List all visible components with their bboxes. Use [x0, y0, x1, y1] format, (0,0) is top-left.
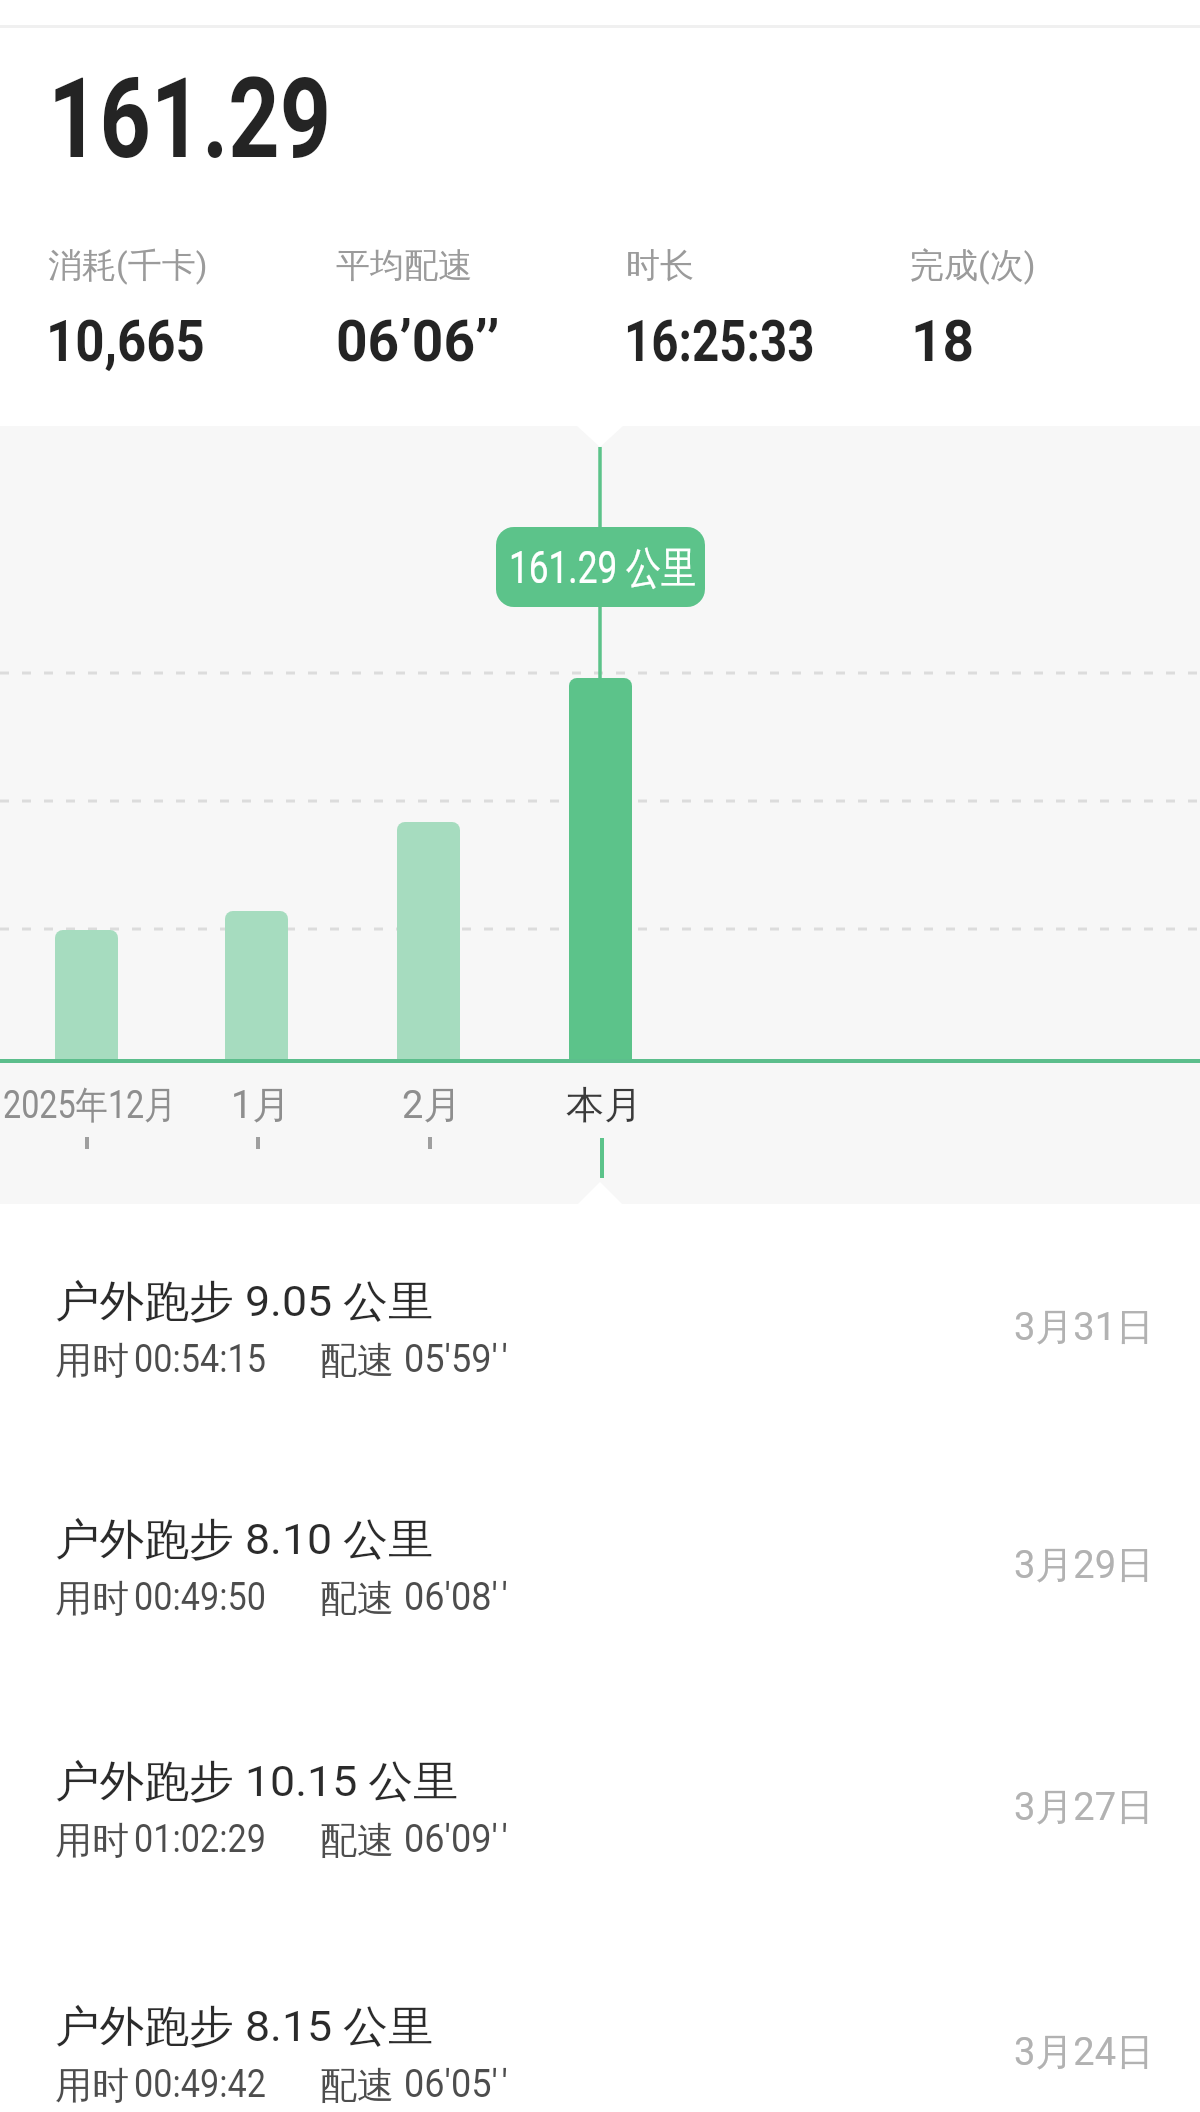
button[interactable]: 户外跑步 8.10 公里: [0, 1513, 1200, 1693]
staticText: 户外跑步 8.10 公里: [55, 1513, 434, 1567]
staticText: 2025年12月: [3, 1081, 177, 1129]
staticText: 06'05' ': [404, 2062, 508, 2107]
staticText: 161.29 公里: [509, 541, 697, 596]
staticText: 06’06’’: [336, 307, 499, 375]
staticText: 户外跑步 8.15 公里: [55, 2000, 434, 2054]
staticText: 10,665: [46, 307, 205, 375]
staticText: 06'08' ': [404, 1575, 508, 1620]
staticText: 16:25:33: [624, 307, 815, 375]
staticText: 平均配速: [336, 244, 472, 287]
staticText: 1月: [231, 1081, 291, 1129]
staticText: 00:49:50: [134, 1575, 266, 1620]
staticText: 配速: [320, 1575, 394, 1622]
staticText: 00:49:42: [134, 2062, 266, 2107]
staticText: 时长: [626, 244, 694, 287]
button[interactable]: 户外跑步 8.15 公里: [0, 2000, 1200, 2112]
staticText: 3月27日: [1014, 1783, 1155, 1831]
button[interactable]: 户外跑步 10.15 公里: [0, 1755, 1200, 1935]
button[interactable]: 户外跑步 9.05 公里: [0, 1275, 1200, 1455]
staticText: 161.29: [48, 53, 331, 184]
staticText: 3月24日: [1014, 2028, 1155, 2076]
staticText: 本月: [566, 1081, 642, 1129]
staticText: 18: [911, 307, 975, 375]
staticText: 户外跑步 9.05 公里: [55, 1275, 434, 1329]
staticText: 消耗(千卡): [48, 244, 208, 287]
staticText: 00:54:15: [134, 1337, 266, 1382]
staticText: 用时: [55, 1817, 129, 1864]
staticText: 用时: [55, 1575, 129, 1622]
staticText: 2月: [402, 1081, 462, 1129]
staticText: 配速: [320, 1817, 394, 1864]
staticText: 配速: [320, 2062, 394, 2109]
staticText: 05'59' ': [404, 1337, 508, 1382]
staticText: 3月31日: [1014, 1303, 1155, 1351]
staticText: 完成(次): [910, 244, 1036, 287]
staticText: 户外跑步 10.15 公里: [55, 1755, 458, 1809]
staticText: 06'09' ': [404, 1817, 508, 1862]
staticText: 配速: [320, 1337, 394, 1384]
staticText: 用时: [55, 1337, 129, 1384]
button[interactable]: [496, 527, 705, 607]
staticText: 01:02:29: [134, 1817, 266, 1862]
staticText: 用时: [55, 2062, 129, 2109]
staticText: 3月29日: [1014, 1541, 1155, 1589]
